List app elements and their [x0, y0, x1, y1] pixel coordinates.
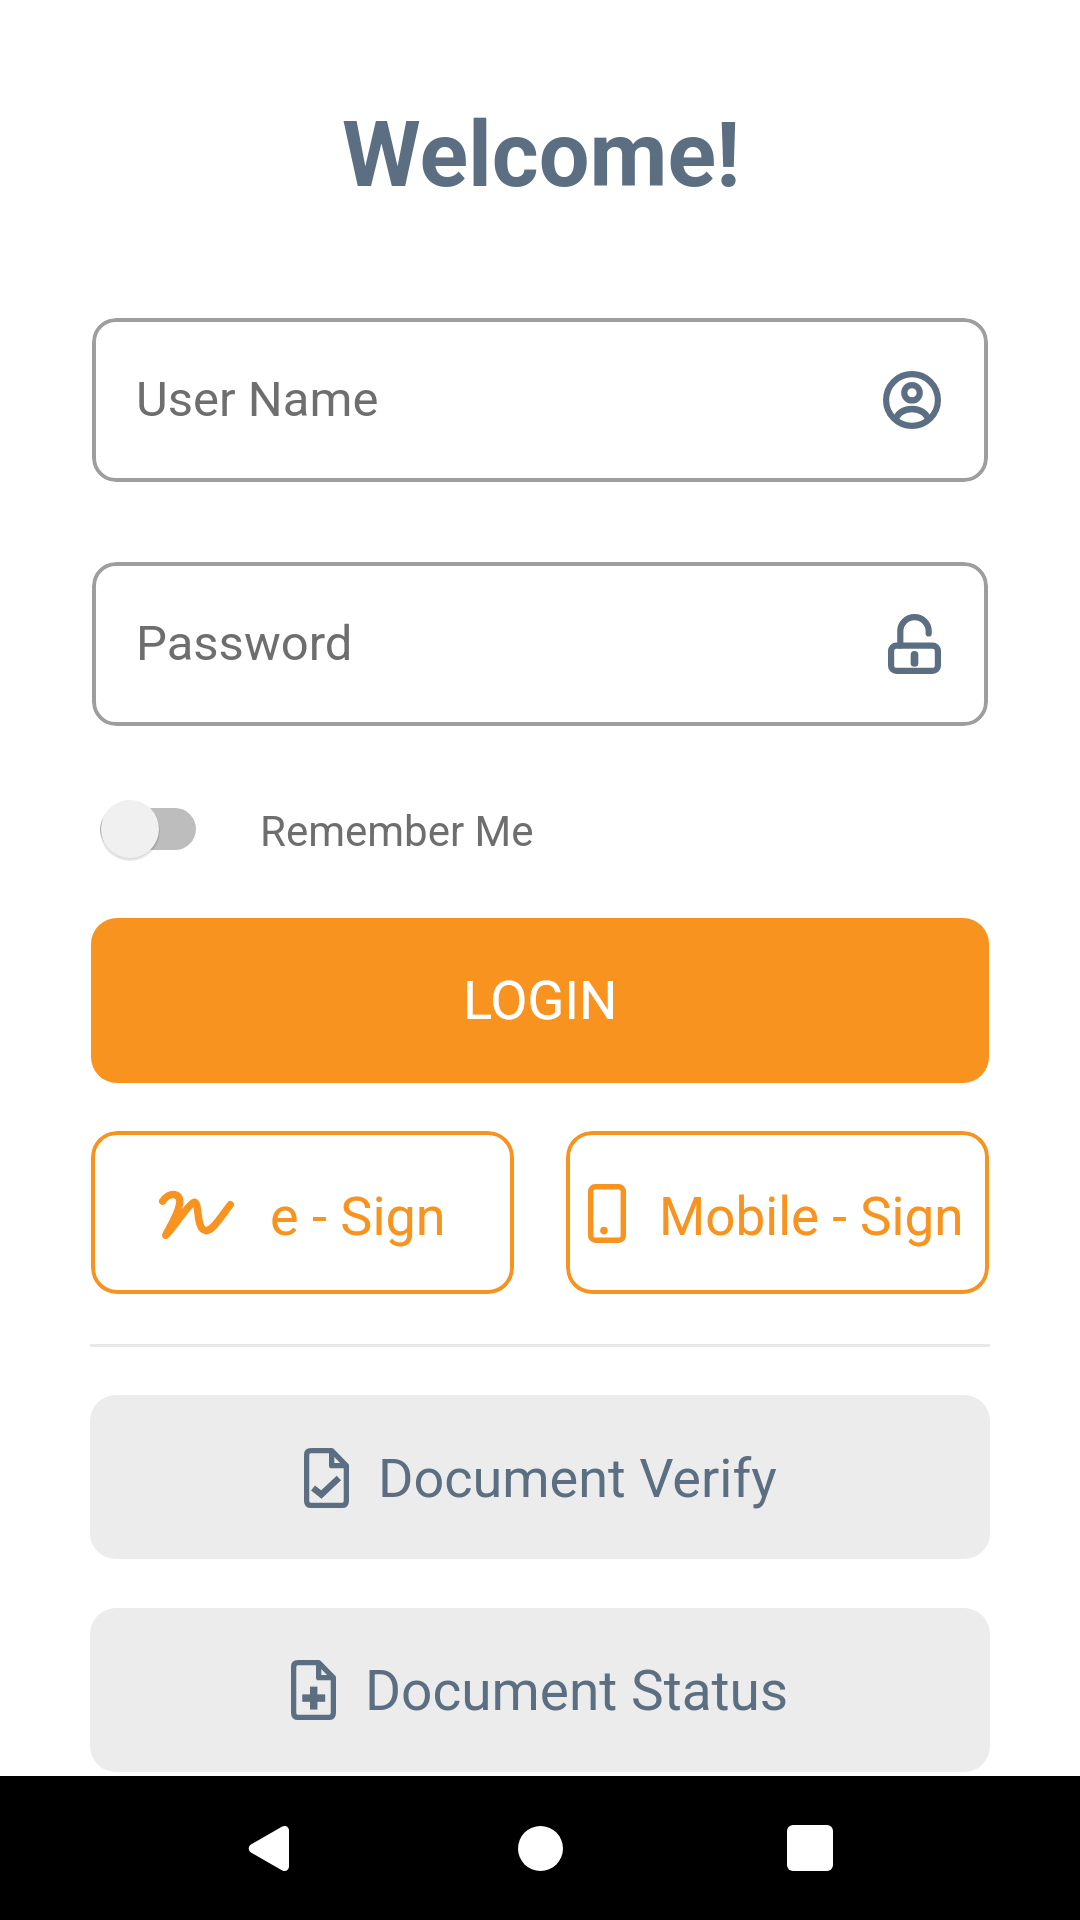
staticText: Document Verify — [378, 1447, 777, 1510]
staticText: Mobile - Sign — [659, 1186, 964, 1248]
button[interactable]: Home — [480, 1776, 600, 1920]
button[interactable]: LOGIN — [91, 918, 989, 1083]
staticText: Document Status — [365, 1659, 789, 1723]
staticText: LOGIN — [463, 969, 618, 1032]
button[interactable]: Document Status — [90, 1608, 990, 1772]
button[interactable]: e - Sign — [91, 1131, 514, 1294]
button[interactable]: Remember Me — [100, 789, 534, 869]
button[interactable]: Password — [92, 562, 988, 726]
button[interactable]: Document Verify — [90, 1395, 990, 1559]
button[interactable]: Back — [207, 1776, 327, 1920]
button[interactable]: Mobile - Sign — [566, 1131, 989, 1294]
staticText: Password — [136, 615, 353, 672]
staticText: Remember Me — [260, 807, 534, 856]
staticText: Welcome! — [342, 103, 741, 208]
staticText: e - Sign — [270, 1185, 446, 1248]
button[interactable]: Recents — [750, 1776, 870, 1920]
staticText: User Name — [136, 371, 379, 428]
button[interactable]: User Name — [92, 318, 988, 482]
